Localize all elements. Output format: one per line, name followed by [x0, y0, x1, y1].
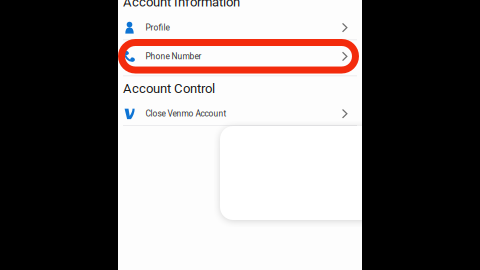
staticText: Profile [145, 23, 169, 32]
staticText: Account Information [123, 0, 240, 10]
staticText: Close Venmo Account [145, 109, 226, 119]
button[interactable]: Profile [118, 16, 362, 40]
button[interactable]: Close Venmo Account [118, 102, 362, 126]
staticText: Account Control [123, 81, 215, 96]
staticText: Phone Number [145, 51, 201, 61]
button[interactable]: Phone Number [118, 44, 362, 68]
